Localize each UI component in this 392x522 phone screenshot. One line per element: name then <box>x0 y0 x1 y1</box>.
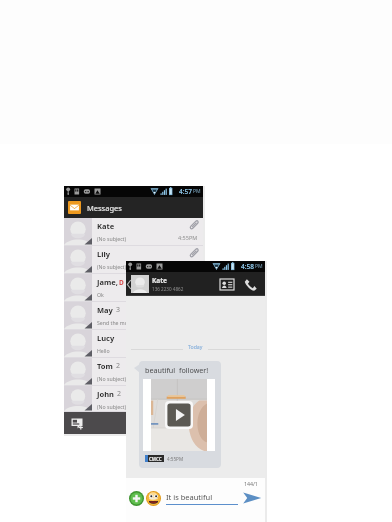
button[interactable]: beautiful follower! <box>139 361 221 468</box>
button[interactable]: Insert emoji <box>146 491 161 506</box>
button[interactable]: Send <box>242 489 262 507</box>
staticText: Kate <box>97 221 115 231</box>
staticText: Jame, <box>97 277 118 287</box>
staticText: (No subject) <box>97 375 127 382</box>
button[interactable]: Call <box>238 272 262 296</box>
staticText: 136 2230 4862 <box>152 286 184 292</box>
staticText: Today <box>188 343 203 350</box>
staticText: (No subject) <box>97 263 127 270</box>
staticText: PM <box>255 263 263 270</box>
button[interactable]: Tom <box>64 358 203 386</box>
staticText: 4:58 <box>241 262 254 271</box>
staticText: Tom <box>97 361 113 371</box>
staticText: Lily <box>97 249 110 259</box>
staticText: D <box>119 278 124 287</box>
staticText: Ok <box>97 291 104 298</box>
staticText: Lucy <box>97 333 115 343</box>
staticText: Send the mon <box>97 319 132 326</box>
staticText: Kate <box>152 276 167 285</box>
button[interactable]: Jame, <box>64 274 203 302</box>
staticText: PM <box>193 188 201 195</box>
staticText: It is beautiful <box>166 492 213 502</box>
staticText: 2 <box>117 389 122 399</box>
button[interactable]: Kate <box>64 218 203 246</box>
staticText: (No subject) <box>97 235 127 242</box>
staticText: Messages <box>87 203 122 213</box>
button[interactable]: New message <box>64 412 203 434</box>
staticText: 2 <box>116 361 121 371</box>
button[interactable]: May <box>64 302 203 330</box>
staticText: May <box>97 305 113 315</box>
button[interactable]: John <box>64 386 203 412</box>
staticText: Hello <box>97 347 110 354</box>
button[interactable]: Messages <box>64 197 203 218</box>
button[interactable]: Lily <box>64 246 203 274</box>
staticText: 4:57 <box>179 187 192 196</box>
staticText: John <box>97 389 114 399</box>
staticText: (No subject) <box>97 403 127 410</box>
button[interactable]: Lucy <box>64 330 203 358</box>
staticText: 144/1 <box>244 480 258 487</box>
staticText: 4:55PM <box>178 234 198 241</box>
button[interactable]: Add attachment <box>129 491 144 506</box>
staticText: CMCC <box>149 456 162 462</box>
staticText: 4:55PM <box>167 456 184 462</box>
button[interactable]: Back <box>126 272 131 296</box>
staticText: beautiful follower! <box>145 365 209 375</box>
staticText: 3 <box>116 305 121 315</box>
button[interactable]: Contact details <box>216 272 238 296</box>
